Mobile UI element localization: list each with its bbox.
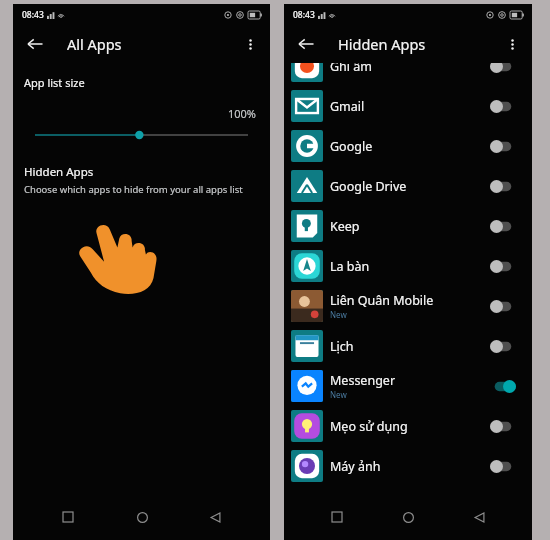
- button[interactable]: Hidden Apps: [13, 162, 270, 200]
- staticText: 08:43: [293, 9, 315, 21]
- staticText: 100%: [13, 106, 256, 121]
- button[interactable]: Google: [284, 126, 532, 166]
- button[interactable]: Hide Lịch: [488, 335, 518, 357]
- button[interactable]: Messenger: [284, 366, 532, 406]
- staticText: Messenger: [330, 372, 396, 389]
- button[interactable]: Hide Gmail: [488, 95, 518, 117]
- staticText: New: [330, 389, 347, 400]
- button[interactable]: Back: [197, 499, 233, 535]
- staticText: App list size: [24, 75, 85, 90]
- button[interactable]: La bàn: [284, 246, 532, 286]
- staticText: Google: [330, 138, 373, 155]
- button[interactable]: Hide La bàn: [488, 255, 518, 277]
- staticText: Ghi âm: [330, 58, 373, 75]
- button[interactable]: Google Drive: [284, 166, 532, 206]
- staticText: Gmail: [330, 98, 365, 115]
- button[interactable]: Recent apps: [50, 499, 86, 535]
- staticText: Liên Quân Mobile: [330, 292, 434, 309]
- staticText: Hidden Apps: [24, 164, 94, 180]
- button[interactable]: Hide Messenger: [488, 375, 518, 397]
- button[interactable]: Recent apps: [319, 499, 355, 535]
- button[interactable]: Hide Liên Quân Mobile: [488, 295, 518, 317]
- staticText: Google Drive: [330, 178, 407, 195]
- button[interactable]: Máy ảnh: [284, 446, 532, 486]
- button[interactable]: More options: [235, 29, 265, 59]
- button[interactable]: Back: [20, 29, 50, 59]
- staticText: 08:43: [22, 9, 44, 21]
- button[interactable]: Lịch: [284, 326, 532, 366]
- button[interactable]: Hide Ghi âm: [488, 55, 518, 77]
- button[interactable]: Hide Máy ảnh: [488, 455, 518, 477]
- staticText: New: [330, 309, 347, 320]
- button[interactable]: Home: [124, 499, 160, 535]
- button[interactable]: Hide Keep: [488, 215, 518, 237]
- button[interactable]: Gmail: [284, 86, 532, 126]
- staticText: Mẹo sử dụng: [330, 418, 408, 435]
- button[interactable]: Ghi âm: [284, 46, 532, 86]
- button[interactable]: More options: [497, 29, 527, 59]
- button[interactable]: Keep: [284, 206, 532, 246]
- button[interactable]: App list size slider: [13, 126, 270, 144]
- button[interactable]: Hide Google: [488, 135, 518, 157]
- staticText: Choose which apps to hide from your all …: [24, 183, 243, 196]
- button[interactable]: Mẹo sử dụng: [284, 406, 532, 446]
- button[interactable]: Hide Google Drive: [488, 175, 518, 197]
- button[interactable]: Back: [461, 499, 497, 535]
- staticText: Keep: [330, 218, 360, 235]
- button[interactable]: Hide Mẹo sử dụng: [488, 415, 518, 437]
- button[interactable]: Back: [291, 29, 321, 59]
- staticText: La bàn: [330, 258, 370, 275]
- button[interactable]: Liên Quân Mobile: [284, 286, 532, 326]
- button[interactable]: Home: [390, 499, 426, 535]
- staticText: Hidden Apps: [338, 34, 426, 54]
- staticText: Máy ảnh: [330, 458, 381, 475]
- staticText: Lịch: [330, 338, 354, 355]
- staticText: All Apps: [67, 34, 122, 54]
